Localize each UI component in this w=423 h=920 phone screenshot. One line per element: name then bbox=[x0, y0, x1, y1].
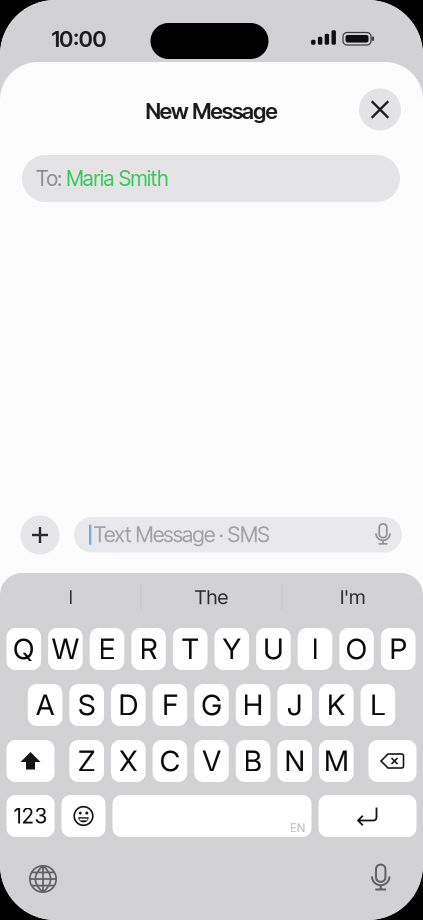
button[interactable]: I bbox=[298, 628, 332, 670]
staticText: T bbox=[181, 632, 199, 666]
button[interactable]: T bbox=[173, 628, 207, 670]
staticText: B bbox=[244, 744, 263, 778]
staticText: To: bbox=[36, 166, 62, 191]
button[interactable]: R bbox=[131, 628, 166, 670]
button[interactable]: The bbox=[141, 584, 282, 610]
staticText: X bbox=[119, 744, 138, 778]
staticText: J bbox=[287, 688, 303, 722]
button[interactable]: U bbox=[256, 628, 291, 670]
button[interactable]: F bbox=[153, 684, 187, 726]
staticText: The bbox=[194, 585, 228, 609]
staticText: Text Message · SMS bbox=[93, 522, 270, 547]
staticText: Z bbox=[78, 744, 96, 778]
staticText: W bbox=[51, 632, 79, 666]
button[interactable]: Delete bbox=[368, 740, 416, 782]
button[interactable]: A bbox=[28, 684, 62, 726]
button[interactable]: S bbox=[69, 684, 104, 726]
button[interactable]: I bbox=[0, 584, 141, 610]
button[interactable]: Space bbox=[112, 795, 311, 837]
button[interactable]: N bbox=[277, 740, 312, 782]
staticText: I'm bbox=[340, 585, 365, 609]
button[interactable]: K bbox=[319, 684, 354, 726]
button[interactable]: I'm bbox=[282, 584, 423, 610]
button[interactable]: E bbox=[90, 628, 124, 670]
staticText: R bbox=[140, 632, 158, 666]
button[interactable]: W bbox=[48, 628, 83, 670]
button[interactable]: Close bbox=[359, 88, 401, 130]
staticText: L bbox=[370, 688, 386, 722]
button[interactable]: Q bbox=[6, 628, 41, 670]
button[interactable]: C bbox=[153, 740, 187, 782]
button[interactable]: Return bbox=[318, 795, 416, 837]
button[interactable]: O bbox=[339, 628, 374, 670]
staticText: Y bbox=[222, 632, 241, 666]
button[interactable]: 123 bbox=[6, 795, 54, 837]
staticText: P bbox=[389, 632, 407, 666]
button[interactable]: Y bbox=[214, 628, 249, 670]
staticText: F bbox=[162, 688, 178, 722]
staticText: 123 bbox=[13, 803, 47, 828]
button[interactable]: B bbox=[236, 740, 270, 782]
staticText: S bbox=[78, 688, 96, 722]
staticText: I bbox=[311, 632, 318, 666]
staticText: New Message bbox=[145, 98, 277, 124]
staticText: V bbox=[202, 744, 221, 778]
staticText: 10:00 bbox=[52, 26, 106, 52]
button[interactable]: Z bbox=[69, 740, 104, 782]
staticText: EN bbox=[289, 821, 305, 835]
button[interactable]: P bbox=[381, 628, 415, 670]
staticText: C bbox=[159, 744, 180, 778]
staticText: I bbox=[68, 585, 72, 609]
button[interactable]: M bbox=[319, 740, 354, 782]
button[interactable]: D bbox=[111, 684, 146, 726]
staticText: Q bbox=[13, 632, 35, 666]
button[interactable]: G bbox=[194, 684, 229, 726]
staticText: M bbox=[324, 744, 349, 778]
button[interactable]: Dictation bbox=[366, 862, 396, 895]
staticText: O bbox=[346, 632, 368, 666]
staticText: K bbox=[327, 688, 346, 722]
staticText: H bbox=[243, 688, 264, 722]
button[interactable]: L bbox=[361, 684, 395, 726]
button[interactable]: Text Message bbox=[74, 517, 402, 552]
staticText: Maria Smith bbox=[66, 166, 168, 191]
button[interactable]: Add attachment bbox=[20, 515, 59, 554]
staticText: U bbox=[263, 632, 284, 666]
button[interactable]: X bbox=[111, 740, 146, 782]
button[interactable]: Shift bbox=[6, 740, 54, 782]
button[interactable]: J bbox=[277, 684, 312, 726]
staticText: E bbox=[98, 632, 115, 666]
staticText: N bbox=[284, 744, 305, 778]
button[interactable]: Next keyboard bbox=[28, 864, 58, 894]
staticText: G bbox=[201, 688, 222, 722]
button[interactable]: V bbox=[194, 740, 229, 782]
button[interactable]: Emoji bbox=[61, 795, 105, 837]
staticText: D bbox=[118, 688, 138, 722]
button[interactable]: To: bbox=[22, 155, 400, 202]
staticText: A bbox=[36, 688, 55, 722]
button[interactable]: H bbox=[236, 684, 270, 726]
